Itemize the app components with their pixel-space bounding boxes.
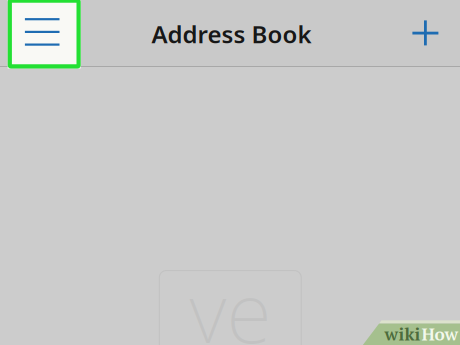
staticText: wiki	[384, 322, 420, 345]
button[interactable]: Add contact	[398, 6, 452, 60]
button[interactable]: Menu	[8, 0, 81, 68]
staticText: Address Book	[151, 18, 311, 50]
staticText: How	[422, 322, 459, 345]
